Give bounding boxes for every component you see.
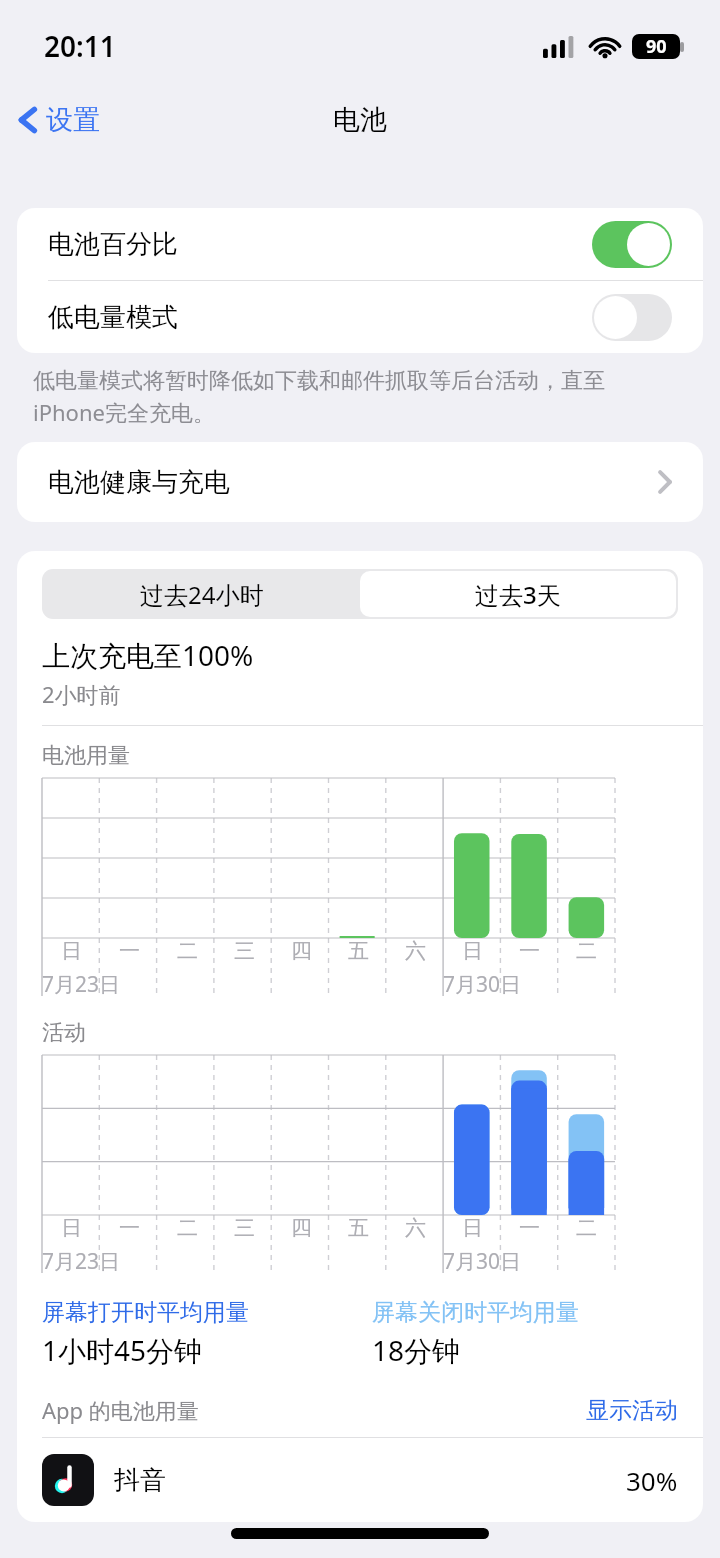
button[interactable]: 电池健康与充电 <box>17 442 703 522</box>
staticText: 六 <box>405 1215 426 1241</box>
button[interactable]: 设置 <box>0 97 110 143</box>
staticText: 7月23日 <box>42 1247 121 1276</box>
staticText: 电池健康与充电 <box>48 466 230 499</box>
button[interactable]: 过去24小时 <box>44 571 360 617</box>
staticText: 上次充电至100% <box>42 636 254 674</box>
staticText: 一 <box>519 938 540 964</box>
staticText: 日 <box>462 938 483 964</box>
staticText: 活动 <box>42 1019 86 1047</box>
staticText: 六 <box>405 938 426 964</box>
staticText: 过去24小时 <box>140 578 264 611</box>
staticText: 二 <box>576 938 597 964</box>
staticText: 一 <box>519 1215 540 1241</box>
staticText: 低电量模式 <box>48 301 178 334</box>
staticText: 20:11 <box>44 27 116 65</box>
staticText: 设置 <box>46 103 100 137</box>
staticText: 30% <box>626 1463 678 1498</box>
staticText: 1小时45分钟 <box>42 1331 203 1369</box>
staticText: 屏幕关闭时平均用量 <box>372 1298 579 1327</box>
staticText: 五 <box>348 1215 369 1241</box>
staticText: 低电量模式将暂时降低如下载和邮件抓取等后台活动，直至 iPhone完全充电。 <box>33 367 605 428</box>
staticText: 电池 <box>333 103 387 137</box>
button[interactable]: 过去3天 <box>360 571 676 617</box>
staticText: 三 <box>234 1215 255 1241</box>
staticText: 过去3天 <box>475 578 561 611</box>
staticText: 五 <box>348 938 369 964</box>
staticText: 显示活动 <box>586 1396 678 1425</box>
staticText: 日 <box>462 1215 483 1241</box>
staticText: 四 <box>291 1215 312 1241</box>
staticText: 四 <box>291 938 312 964</box>
staticText: 18分钟 <box>372 1331 461 1369</box>
staticText: 电池百分比 <box>48 228 178 261</box>
staticText: 二 <box>177 938 198 964</box>
button[interactable]: 显示活动 <box>586 1396 678 1425</box>
staticText: 90 <box>646 34 667 59</box>
staticText: 日 <box>61 938 82 964</box>
staticText: 二 <box>576 1215 597 1241</box>
staticText: 二 <box>177 1215 198 1241</box>
staticText: 2小时前 <box>42 679 121 709</box>
staticText: 7月30日 <box>443 1247 522 1276</box>
staticText: 一 <box>119 938 140 964</box>
staticText: 抖音 <box>114 1464 166 1497</box>
staticText: App 的电池用量 <box>42 1395 199 1425</box>
button[interactable]: 电池百分比 <box>17 208 703 280</box>
button[interactable]: 抖音 <box>17 1438 703 1522</box>
staticText: 屏幕打开时平均用量 <box>42 1298 249 1327</box>
staticText: 三 <box>234 938 255 964</box>
staticText: 一 <box>119 1215 140 1241</box>
staticText: 7月30日 <box>443 970 522 999</box>
staticText: 日 <box>61 1215 82 1241</box>
staticText: 7月23日 <box>42 970 121 999</box>
staticText: 电池用量 <box>42 742 130 770</box>
button[interactable]: 低电量模式 <box>17 281 703 353</box>
